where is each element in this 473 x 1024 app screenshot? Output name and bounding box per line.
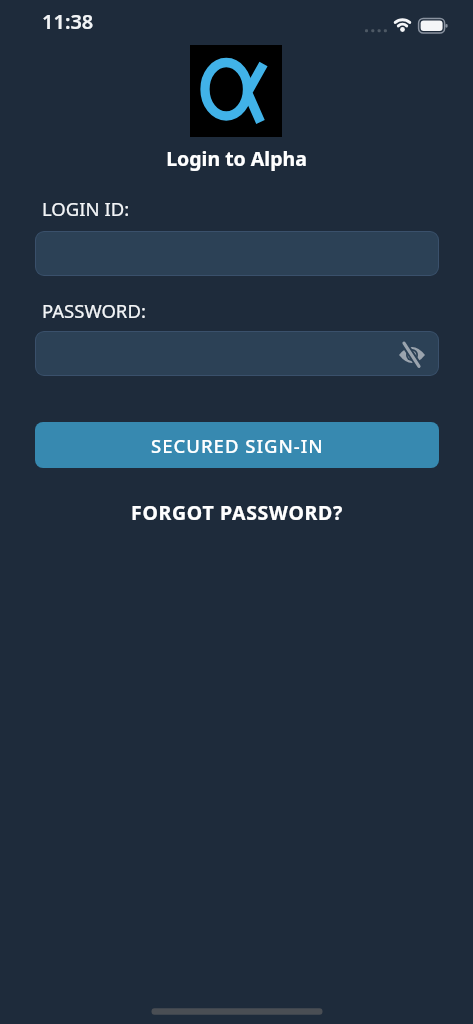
staticText: Login to Alpha	[0, 145, 473, 172]
staticText: 11:38	[42, 8, 94, 35]
button[interactable]	[396, 341, 428, 369]
staticText: SECURED SIGN-IN	[151, 433, 324, 458]
staticText: FORGOT PASSWORD?	[131, 499, 343, 526]
button[interactable]: FORGOT PASSWORD?	[112, 496, 362, 528]
staticText: LOGIN ID:	[42, 196, 130, 221]
staticText: PASSWORD:	[42, 298, 146, 323]
button[interactable]	[35, 231, 439, 276]
button[interactable]	[35, 331, 439, 376]
button[interactable]: SECURED SIGN-IN	[35, 422, 439, 468]
